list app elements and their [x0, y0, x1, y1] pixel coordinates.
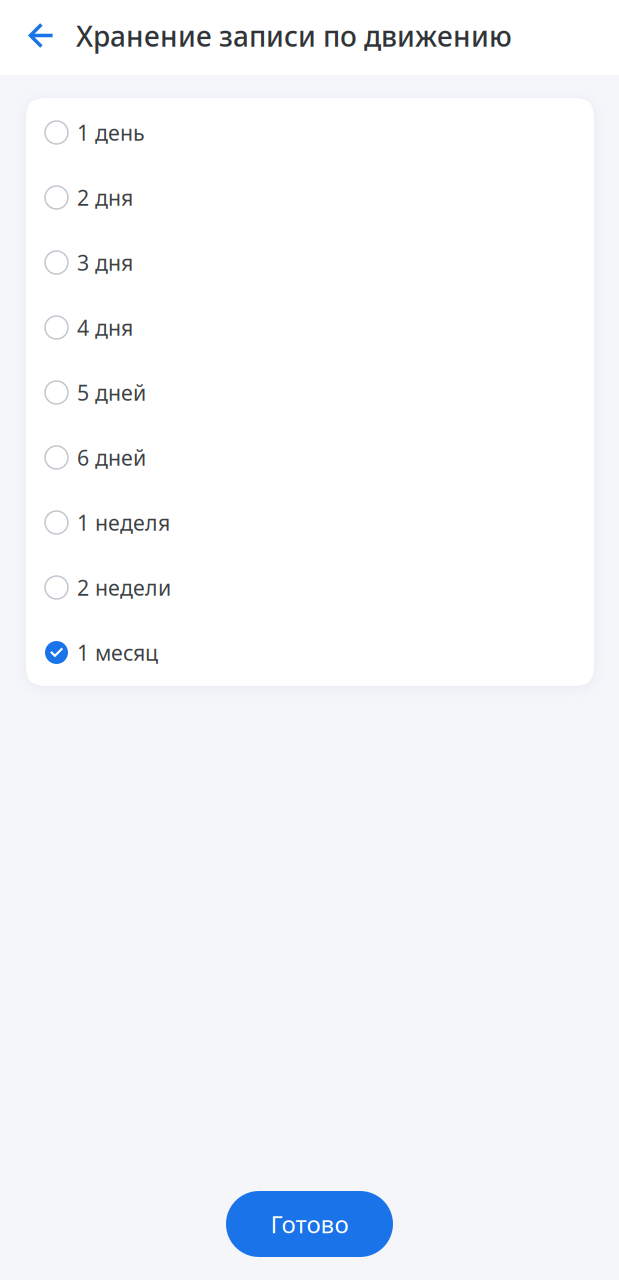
staticText: 2 недели: [77, 573, 171, 602]
staticText: Готово: [270, 1208, 348, 1240]
button[interactable]: 6 дней: [26, 425, 594, 490]
staticText: 2 дня: [77, 183, 133, 212]
button[interactable]: Back: [19, 14, 63, 60]
staticText: 5 дней: [77, 378, 146, 407]
button[interactable]: 4 дня: [26, 295, 594, 360]
staticText: 4 дня: [77, 313, 133, 342]
staticText: 1 день: [77, 118, 145, 147]
button[interactable]: 1 месяц: [26, 620, 594, 685]
button[interactable]: 1 неделя: [26, 490, 594, 555]
button[interactable]: 2 дня: [26, 165, 594, 230]
staticText: Хранение записи по движению: [76, 17, 512, 55]
staticText: 3 дня: [77, 248, 133, 277]
button[interactable]: 1 день: [26, 100, 594, 165]
button[interactable]: 5 дней: [26, 360, 594, 425]
button[interactable]: 3 дня: [26, 230, 594, 295]
button[interactable]: Готово: [226, 1191, 393, 1257]
staticText: 1 неделя: [77, 508, 170, 537]
staticText: 1 месяц: [77, 638, 158, 667]
staticText: 6 дней: [77, 443, 146, 472]
button[interactable]: 2 недели: [26, 555, 594, 620]
